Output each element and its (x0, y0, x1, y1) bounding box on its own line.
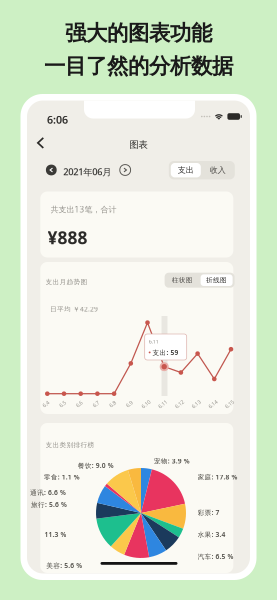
staticText: 2021年06月 (63, 165, 111, 178)
staticText: 宠物: 3.9 % (154, 456, 190, 465)
staticText: 6.14 (208, 400, 218, 408)
staticText: 支出类别排行榜 (46, 441, 95, 449)
staticText: 餐饮: 9.0 % (78, 461, 114, 470)
button[interactable]: Back (32, 132, 49, 154)
staticText: 6.6 (76, 400, 83, 408)
staticText: 6.5 (59, 400, 66, 408)
staticText: 共支出13笔，合计 (50, 204, 116, 215)
staticText: 支出: 59 (152, 348, 178, 357)
staticText: 汽车: 6.5 % (197, 552, 233, 561)
staticText: 6.7 (92, 400, 99, 408)
button[interactable]: 支出 (171, 163, 201, 177)
staticText: 通讯: 6.6 % (30, 488, 66, 497)
staticText: 折线图 (206, 276, 227, 284)
button[interactable]: 折线图 (201, 274, 233, 286)
staticText: 强大的图表功能 (65, 20, 212, 46)
staticText: 6.9 (126, 400, 133, 408)
button[interactable]: 柱状图 (166, 274, 198, 286)
staticText: 6.11 (149, 338, 159, 345)
staticText: 家庭: 17.8 % (197, 472, 237, 481)
button[interactable]: Next month (120, 165, 131, 175)
staticText: 彩票: 7 (197, 508, 219, 517)
button[interactable]: 收入 (203, 163, 233, 177)
staticText: 柱状图 (172, 276, 193, 284)
staticText: 美容: 5.6 % (46, 561, 82, 570)
staticText: 6.12 (174, 400, 184, 408)
staticText: 支出 (178, 165, 194, 175)
button[interactable]: Previous month (46, 165, 57, 175)
staticText: 旅行: 5.6 % (31, 500, 67, 509)
staticText: 6.8 (109, 400, 116, 408)
staticText: 支出月趋势图 (46, 278, 88, 286)
staticText: 6.4 (42, 400, 49, 408)
staticText: 收入 (210, 165, 226, 175)
staticText: 6.10 (141, 400, 151, 408)
staticText: 6:06 (47, 112, 68, 127)
staticText: 6.13 (191, 400, 201, 408)
staticText: 11.3 % (44, 530, 66, 539)
staticText: ¥888 (47, 226, 87, 249)
staticText: 日平均 ￥42.29 (50, 304, 98, 313)
staticText: 图表 (129, 139, 147, 150)
staticText: 6.15 (224, 400, 234, 408)
staticText: 水果: 3.4 (197, 530, 225, 539)
staticText: 6.11 (158, 400, 168, 408)
staticText: 零食: 1.1 % (44, 472, 80, 481)
staticText: 一目了然的分析数据 (44, 53, 233, 79)
